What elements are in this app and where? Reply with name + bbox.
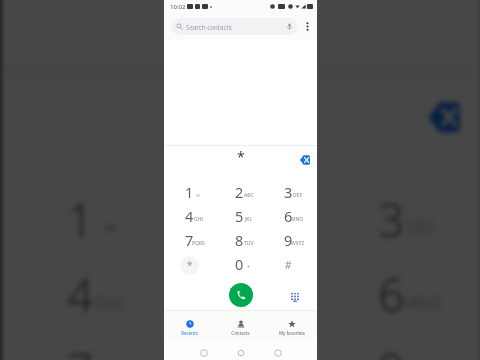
staticText: 5 <box>235 206 244 226</box>
staticText: Search contacts <box>186 23 232 31</box>
button[interactable]: Search contacts <box>171 18 298 35</box>
button[interactable]: Recents <box>164 311 215 341</box>
button[interactable]: 5 <box>161 258 322 334</box>
staticText: 1 <box>67 186 96 249</box>
button[interactable]: 0 <box>215 253 266 277</box>
staticText: 3 <box>378 186 406 249</box>
staticText: * <box>237 147 245 166</box>
button[interactable]: * <box>164 253 215 277</box>
staticText: 3 <box>284 182 293 202</box>
staticText: 7 <box>67 337 96 360</box>
staticText: 6 <box>378 262 406 324</box>
staticText: 5 <box>224 262 253 324</box>
staticText: * <box>187 258 193 272</box>
button[interactable]: 4 <box>1 258 161 334</box>
button[interactable]: 3 <box>322 183 480 258</box>
staticText: ∞ <box>105 218 118 236</box>
button[interactable]: 5 <box>215 205 266 229</box>
button[interactable]: 7 <box>164 229 215 253</box>
staticText: Recents <box>181 330 198 336</box>
button[interactable]: 1 <box>164 181 215 205</box>
button[interactable]: More options <box>298 18 317 35</box>
staticText: JKL <box>245 216 253 223</box>
staticText: ∞ <box>196 192 201 198</box>
staticText: My favorites <box>279 330 305 336</box>
staticText: 4 <box>185 206 194 226</box>
button[interactable]: 8 <box>215 229 266 253</box>
staticText: TUV <box>244 240 254 247</box>
staticText: 2 <box>235 182 244 202</box>
button[interactable]: 9 <box>266 229 317 253</box>
button[interactable]: 3 <box>266 181 317 205</box>
button[interactable]: Call <box>229 283 253 307</box>
button[interactable]: Backspace <box>419 92 469 142</box>
staticText: 7 <box>185 230 194 250</box>
button[interactable]: 1 <box>1 183 161 258</box>
button[interactable]: Home <box>222 346 259 360</box>
staticText: 10:02 <box>170 3 186 11</box>
staticText: 1 <box>185 182 194 202</box>
button[interactable]: Recent apps <box>259 346 296 360</box>
button[interactable]: 7 <box>1 334 161 360</box>
button[interactable]: Backspace <box>297 152 313 168</box>
button[interactable]: 2 <box>215 181 266 205</box>
staticText: + <box>247 264 250 271</box>
staticText: JKL <box>256 293 278 315</box>
staticText: 4 <box>67 262 96 324</box>
staticText: ABC <box>244 192 254 199</box>
staticText: 9 <box>284 230 293 250</box>
staticText: 6 <box>284 206 293 226</box>
staticText: 9 <box>378 337 406 360</box>
button[interactable]: # <box>266 253 317 277</box>
button[interactable]: 4 <box>164 205 215 229</box>
button[interactable]: Contacts <box>215 311 266 341</box>
staticText: 0 <box>235 254 244 274</box>
button[interactable]: My favorites <box>266 311 317 341</box>
staticText: 8 <box>235 230 244 250</box>
button[interactable]: 2 <box>161 183 322 258</box>
button[interactable]: Keypad <box>287 289 303 305</box>
staticText: PQRS <box>192 240 205 247</box>
staticText: 2 <box>224 186 253 249</box>
button[interactable]: Back <box>185 346 222 360</box>
button[interactable]: 8 <box>161 334 322 360</box>
staticText: MNO <box>403 293 441 315</box>
staticText: 8 <box>224 337 253 360</box>
staticText: # <box>285 258 292 272</box>
staticText: MNO <box>291 216 304 223</box>
staticText: Contacts <box>231 330 250 336</box>
staticText: WXYZ <box>291 240 305 247</box>
staticText: GHI <box>194 216 204 223</box>
button[interactable]: 6 <box>266 205 317 229</box>
staticText: DEF <box>293 192 303 199</box>
button[interactable]: 6 <box>322 258 480 334</box>
